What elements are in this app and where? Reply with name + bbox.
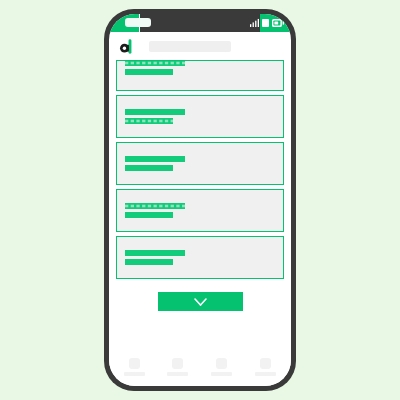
button[interactable]: Profile [243, 348, 287, 386]
button[interactable] [116, 95, 284, 138]
button[interactable]: Search [156, 348, 199, 386]
button[interactable] [116, 236, 284, 279]
button[interactable] [116, 142, 284, 185]
button[interactable] [116, 189, 284, 232]
button[interactable]: Orders [199, 348, 243, 386]
button[interactable]: App logo [118, 38, 135, 55]
button[interactable]: Expand [158, 292, 243, 311]
button[interactable]: Home [113, 348, 156, 386]
button[interactable] [116, 60, 284, 91]
